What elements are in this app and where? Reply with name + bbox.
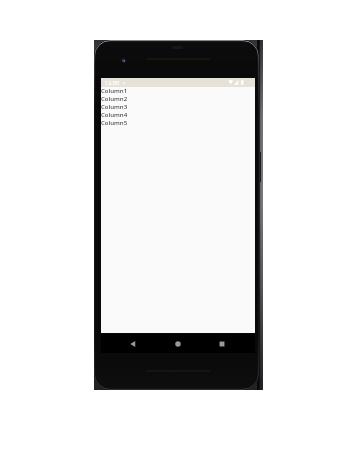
staticText: Column3	[101, 102, 128, 110]
staticText: 12:50	[105, 79, 120, 87]
button[interactable]: Column1	[101, 86, 255, 94]
staticText: Column2	[101, 94, 128, 102]
button[interactable]: Column5	[101, 118, 255, 126]
button[interactable]: Back	[122, 334, 144, 353]
staticText: Column5	[101, 118, 128, 126]
button[interactable]: Recent apps	[211, 334, 233, 353]
staticText: Column1	[101, 86, 128, 94]
button[interactable]: Column2	[101, 94, 255, 102]
button[interactable]: Column4	[101, 110, 255, 118]
button[interactable]: Column3	[101, 102, 255, 110]
button[interactable]: Home	[167, 334, 189, 353]
staticText: Column4	[101, 110, 128, 118]
